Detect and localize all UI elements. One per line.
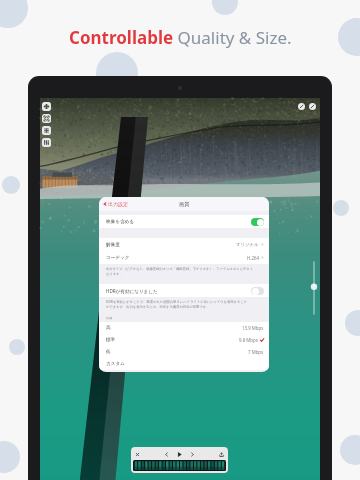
button[interactable]: Next bbox=[190, 452, 195, 457]
button[interactable]: コーデック bbox=[106, 251, 264, 264]
button[interactable]: Toggle on bbox=[251, 218, 264, 226]
button[interactable]: Play bbox=[176, 451, 183, 458]
staticText: 7 Mbps bbox=[248, 349, 264, 355]
button[interactable]: カスタム bbox=[106, 357, 264, 370]
button[interactable]: Focus bbox=[42, 114, 51, 123]
button[interactable]: Previous bbox=[164, 452, 169, 457]
button[interactable]: Grid bbox=[42, 126, 51, 135]
button[interactable]: 低 bbox=[106, 346, 264, 357]
button[interactable]: Pan bbox=[42, 102, 51, 111]
button[interactable]: Toggle off bbox=[251, 287, 264, 295]
staticText: コーデック bbox=[106, 255, 130, 261]
button[interactable]: 出力設定 bbox=[103, 197, 128, 211]
staticText: 9.8 Mbps bbox=[239, 337, 258, 343]
button[interactable]: Mute bbox=[298, 103, 305, 110]
staticText: HDRが有効になりました bbox=[106, 288, 158, 294]
staticText: 低 bbox=[106, 349, 111, 355]
staticText: オリジナル bbox=[236, 242, 259, 248]
button[interactable]: 解像度 bbox=[106, 238, 264, 251]
staticText: 出力設定 bbox=[108, 201, 128, 207]
staticText: 品質 bbox=[106, 316, 113, 321]
button[interactable]: Share bbox=[219, 452, 224, 457]
staticText: 映像を含める bbox=[106, 219, 134, 225]
button[interactable]: 標準 bbox=[106, 334, 264, 346]
staticText: 解像度 bbox=[106, 242, 120, 248]
button[interactable]: 映像を含める bbox=[106, 215, 264, 228]
staticText: HDRを有効にすることで、処理された画面の明るいハイライトと深いシャドウを表現す… bbox=[106, 299, 248, 313]
staticText: カスタム bbox=[106, 361, 125, 367]
button[interactable]: Adjust bbox=[42, 138, 51, 147]
staticText: 標準 bbox=[106, 337, 116, 343]
staticText: 画質 bbox=[179, 201, 190, 208]
button[interactable]: 高 bbox=[106, 322, 264, 334]
button[interactable]: Edit bbox=[309, 103, 316, 110]
button[interactable]: HDRが有効になりました bbox=[106, 284, 264, 297]
staticText: 13.9 Mbps bbox=[242, 325, 264, 331]
staticText: Controllable Quality & Size. bbox=[69, 26, 292, 49]
button[interactable]: Close bbox=[135, 452, 140, 457]
staticText: 出力サイズ（ビデオなし、映像圧縮のオンは「機能圧縮」下がります）。ファイルはさら… bbox=[106, 267, 254, 280]
staticText: H.264 bbox=[247, 255, 259, 261]
staticText: 高 bbox=[106, 325, 111, 331]
